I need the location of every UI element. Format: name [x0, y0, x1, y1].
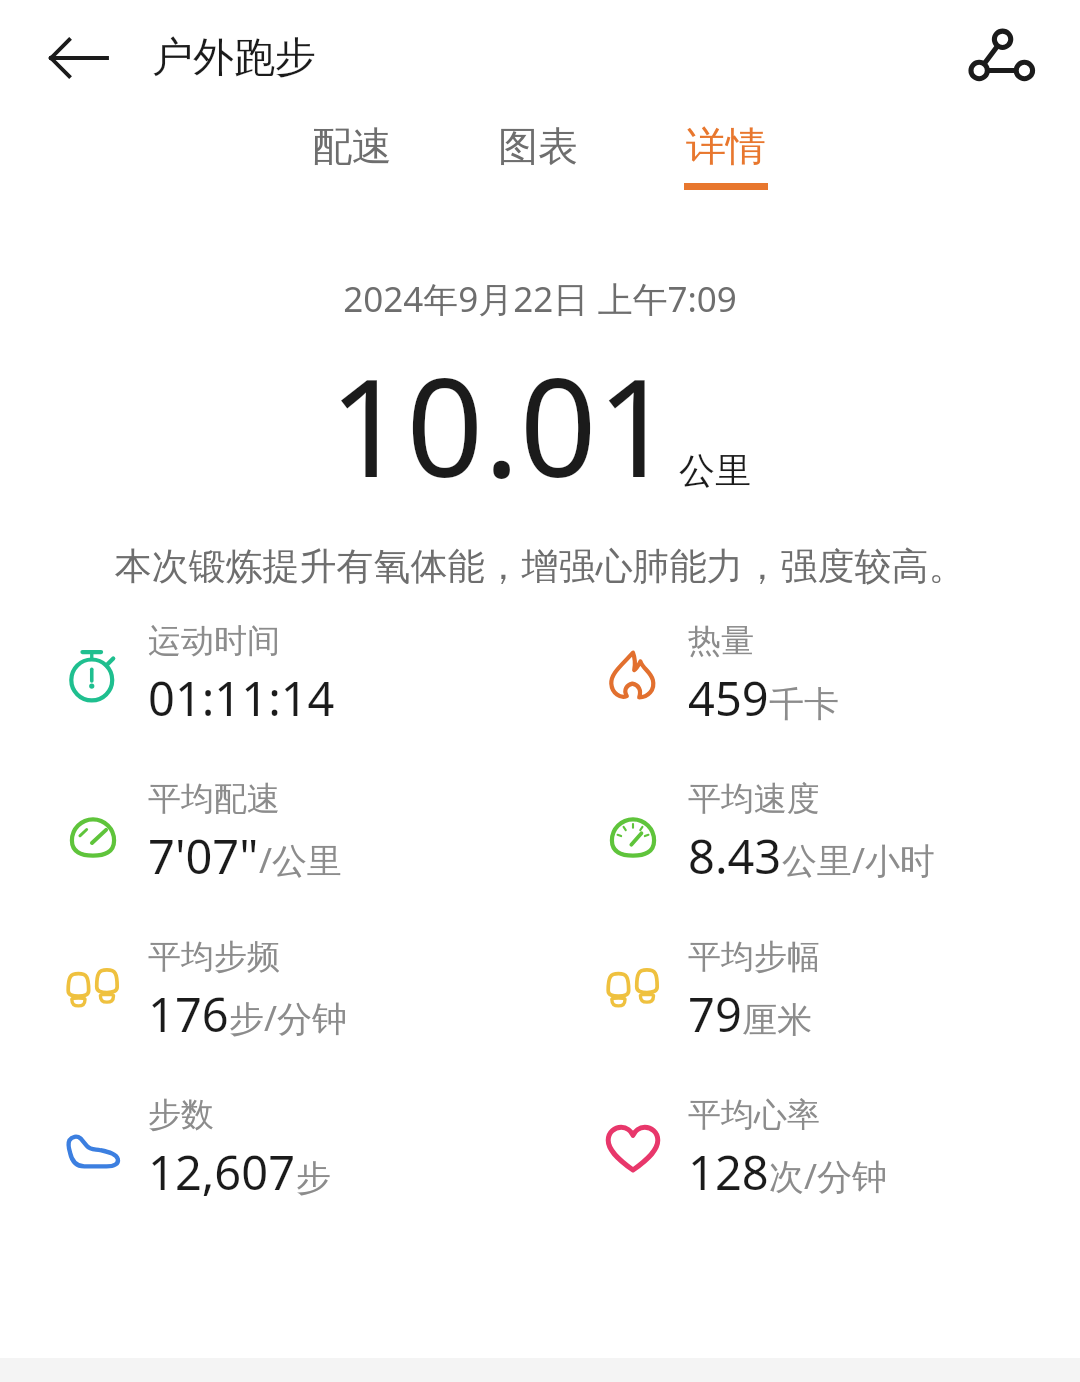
staticText: 厘米: [742, 998, 812, 1042]
staticText: 平均速度: [688, 778, 820, 820]
staticText: 次/分钟: [769, 1152, 888, 1200]
staticText: 01:11:14: [148, 666, 335, 730]
staticText: 本次锻炼提升有氧体能，增强心肺能力，强度较高。: [0, 543, 1080, 590]
button[interactable]: 配速: [278, 115, 426, 196]
button[interactable]: 图表: [464, 115, 612, 196]
staticText: 配速: [312, 121, 392, 171]
staticText: 千卡: [769, 682, 839, 726]
staticText: 128: [688, 1140, 769, 1204]
staticText: 热量: [688, 620, 754, 662]
staticText: 79: [688, 982, 742, 1046]
staticText: 步数: [148, 1094, 214, 1136]
staticText: 步: [296, 1156, 331, 1200]
staticText: 详情: [686, 121, 766, 171]
button[interactable]: 运动时间: [0, 620, 540, 730]
staticText: 平均心率: [688, 1094, 820, 1136]
button[interactable]: 平均速度: [540, 778, 1080, 888]
staticText: 2024年9月22日 上午7:09: [0, 275, 1080, 323]
staticText: 176: [148, 982, 229, 1046]
button[interactable]: Back: [44, 23, 114, 93]
staticText: 平均配速: [148, 778, 280, 820]
staticText: /公里: [259, 836, 343, 884]
button[interactable]: 详情: [650, 115, 802, 196]
button[interactable]: 平均步幅: [540, 936, 1080, 1046]
staticText: 10.01: [329, 333, 675, 517]
staticText: 7'07": [148, 824, 259, 888]
button[interactable]: 平均步频: [0, 936, 540, 1046]
staticText: 8.43: [688, 824, 782, 888]
staticText: 公里/小时: [782, 836, 936, 884]
staticText: 图表: [498, 121, 578, 171]
button[interactable]: Share: [962, 19, 1040, 97]
staticText: 平均步幅: [688, 936, 820, 978]
staticText: 12,607: [148, 1140, 296, 1204]
staticText: 运动时间: [148, 620, 280, 662]
staticText: 步/分钟: [229, 994, 348, 1042]
staticText: 户外跑步: [152, 32, 316, 84]
button[interactable]: 平均配速: [0, 778, 540, 888]
button[interactable]: 热量: [540, 620, 1080, 730]
button[interactable]: 步数: [0, 1094, 540, 1204]
staticText: 平均步频: [148, 936, 280, 978]
staticText: 459: [688, 666, 769, 730]
staticText: 公里: [679, 448, 751, 493]
button[interactable]: 平均心率: [540, 1094, 1080, 1204]
